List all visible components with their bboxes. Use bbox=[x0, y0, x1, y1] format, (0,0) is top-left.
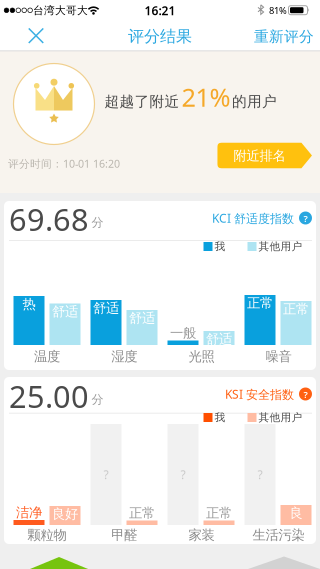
staticText: 正常 bbox=[129, 505, 155, 521]
staticText: ? bbox=[257, 466, 262, 482]
staticText: 其他用户 bbox=[258, 411, 302, 424]
staticText: 的用户 bbox=[232, 92, 277, 110]
staticText: KSI 安全指数 bbox=[225, 386, 294, 402]
staticText: 良好 bbox=[52, 506, 78, 522]
button[interactable]: KSI 安全指数 bbox=[225, 386, 312, 402]
button[interactable]: 附近排名 bbox=[217, 143, 312, 168]
staticText: 我 bbox=[214, 240, 225, 253]
button[interactable]: KCI 舒适度指数 bbox=[212, 210, 312, 226]
staticText: ? bbox=[303, 388, 307, 401]
staticText: 81% bbox=[269, 4, 287, 17]
button[interactable]: 重新评分 bbox=[254, 21, 314, 51]
staticText: 正常 bbox=[283, 301, 309, 317]
staticText: 评分时间：10-01 16:20 bbox=[8, 156, 120, 171]
staticText: 69.68 bbox=[9, 199, 89, 239]
staticText: 正常 bbox=[247, 295, 273, 311]
staticText: 颗粒物 bbox=[27, 527, 66, 543]
staticText: 超越了附近 bbox=[104, 92, 179, 110]
staticText: 其他用户 bbox=[258, 240, 302, 253]
staticText: 分 bbox=[91, 215, 103, 230]
staticText: 舒适 bbox=[129, 310, 155, 326]
staticText: 良 bbox=[289, 505, 302, 521]
staticText: 生活污染 bbox=[253, 527, 305, 543]
staticText: 分 bbox=[91, 392, 103, 407]
staticText: 湿度 bbox=[111, 348, 137, 365]
staticText: ? bbox=[180, 466, 185, 482]
staticText: 16:21 bbox=[144, 2, 175, 18]
staticText: 一般 bbox=[170, 325, 196, 341]
staticText: 温度 bbox=[34, 348, 60, 365]
staticText: 舒适 bbox=[93, 300, 119, 316]
staticText: 评分结果 bbox=[128, 26, 192, 46]
staticText: KCI 舒适度指数 bbox=[212, 210, 294, 226]
staticText: 附近排名 bbox=[233, 148, 285, 164]
staticText: 我 bbox=[214, 411, 225, 424]
staticText: 光照 bbox=[188, 348, 214, 365]
staticText: 家装 bbox=[188, 527, 214, 543]
staticText: 甲醛 bbox=[111, 527, 137, 543]
staticText: ? bbox=[103, 466, 108, 482]
staticText: 洁净 bbox=[16, 504, 42, 521]
staticText: 噪音 bbox=[266, 348, 292, 365]
staticText: 重新评分 bbox=[254, 27, 314, 45]
staticText: 台湾大哥大 bbox=[33, 4, 88, 17]
button[interactable] bbox=[21, 20, 51, 51]
staticText: 21% bbox=[181, 80, 230, 114]
staticText: 舒适 bbox=[52, 303, 78, 320]
staticText: 25.00 bbox=[9, 376, 89, 416]
staticText: ? bbox=[303, 212, 307, 225]
staticText: 舒适 bbox=[206, 331, 232, 347]
staticText: 正常 bbox=[206, 505, 232, 521]
staticText: 热 bbox=[22, 296, 35, 312]
